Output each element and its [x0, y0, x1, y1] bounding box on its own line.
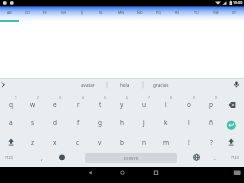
staticText: 5 [104, 96, 106, 100]
button[interactable]: , [32, 149, 52, 165]
staticText: EF [43, 10, 47, 15]
staticText: k [164, 118, 168, 127]
button[interactable] [145, 167, 165, 183]
staticText: h [120, 118, 125, 127]
button[interactable]: y [112, 96, 132, 112]
button[interactable]: r [68, 96, 88, 112]
staticText: n [142, 138, 147, 147]
staticText: a [9, 118, 13, 127]
button[interactable]: MN [111, 6, 130, 21]
button[interactable]: w [23, 96, 43, 112]
button[interactable]: AB [0, 6, 18, 21]
button[interactable]: XY [225, 6, 244, 21]
button[interactable] [228, 167, 244, 183]
button[interactable]: x [45, 134, 65, 150]
button[interactable]: n [134, 134, 154, 150]
button[interactable]: p [201, 96, 221, 112]
staticText: ?123 [231, 155, 239, 160]
staticText: 0 [215, 96, 217, 100]
button[interactable]: c [68, 134, 88, 150]
staticText: t [99, 100, 102, 109]
button[interactable]: GH [54, 6, 73, 21]
staticText: ñ [209, 118, 214, 127]
button[interactable]: ! [179, 134, 199, 150]
staticText: r [77, 100, 80, 109]
button[interactable]: KL [92, 6, 111, 21]
button[interactable]: TU [187, 6, 206, 21]
button[interactable]: b [112, 134, 132, 150]
staticText: i [165, 100, 167, 109]
staticText: s [31, 118, 35, 127]
button[interactable]: ES·EN·FR [85, 153, 177, 163]
button[interactable]: o [179, 96, 199, 112]
button[interactable]: k [156, 114, 176, 130]
button[interactable]: l [179, 114, 199, 130]
staticText: hola [120, 82, 130, 88]
staticText: ! [188, 138, 190, 147]
staticText: 10:00 [233, 0, 243, 5]
button[interactable]: i [156, 96, 176, 112]
button[interactable] [112, 167, 132, 183]
staticText: l [188, 118, 190, 127]
button[interactable]: PQ [149, 6, 168, 21]
button[interactable]: g [90, 114, 110, 130]
button[interactable]: j [134, 114, 154, 130]
button[interactable]: ?123 [0, 149, 19, 165]
staticText: c [76, 138, 80, 147]
button[interactable]: EF [36, 6, 54, 21]
staticText: 2 [37, 96, 39, 100]
button[interactable]: VW [206, 6, 225, 21]
button[interactable]: v [90, 134, 110, 150]
button[interactable]: f [68, 114, 88, 130]
staticText: p [209, 100, 213, 109]
button[interactable]: ? [201, 134, 221, 150]
staticText: ÑO [137, 10, 143, 15]
button[interactable]: e [45, 96, 65, 112]
staticText: . [214, 153, 216, 162]
button[interactable]: . [205, 149, 225, 165]
staticText: q [9, 100, 13, 109]
button[interactable]: m [156, 134, 176, 150]
staticText: 4 [82, 96, 84, 100]
staticText: IJ [81, 10, 84, 15]
staticText: o [187, 100, 191, 109]
button[interactable]: t [90, 96, 110, 112]
staticText: f [77, 118, 80, 127]
staticText: ? [210, 138, 213, 147]
button[interactable]: ÑO [130, 6, 149, 21]
button[interactable]: h [112, 114, 132, 130]
staticText: TU [194, 10, 199, 15]
staticText: MN [118, 10, 124, 15]
staticText: 8 [170, 96, 172, 100]
button[interactable] [80, 167, 100, 183]
button[interactable]: u [134, 96, 154, 112]
staticText: v [98, 138, 102, 147]
staticText: RS [175, 10, 180, 15]
button[interactable]: a [1, 114, 21, 130]
button[interactable]: z [23, 134, 43, 150]
button[interactable]: d [45, 114, 65, 130]
staticText: d [53, 118, 57, 127]
button[interactable]: q [1, 96, 21, 112]
button[interactable]: CD [18, 6, 36, 21]
staticText: 7 [148, 96, 150, 100]
staticText: m [163, 138, 170, 147]
staticText: CD [25, 10, 30, 15]
staticText: XY [232, 10, 237, 15]
staticText: j [143, 118, 145, 127]
button[interactable]: IJ [73, 6, 92, 21]
button[interactable]: ?123 [225, 149, 244, 165]
staticText: , [41, 153, 43, 162]
button[interactable]: s [23, 114, 43, 130]
staticText: e [53, 100, 57, 109]
staticText: u [142, 100, 147, 109]
staticText: gracias [153, 82, 169, 88]
button[interactable]: RS [168, 6, 187, 21]
staticText: w [30, 100, 36, 109]
button[interactable]: ñ [201, 114, 221, 130]
staticText: 9 [193, 96, 195, 100]
staticText: avatar [81, 82, 95, 88]
staticText: y [120, 100, 124, 109]
staticText: x [53, 138, 57, 147]
staticText: ES·EN·FR [124, 156, 138, 161]
